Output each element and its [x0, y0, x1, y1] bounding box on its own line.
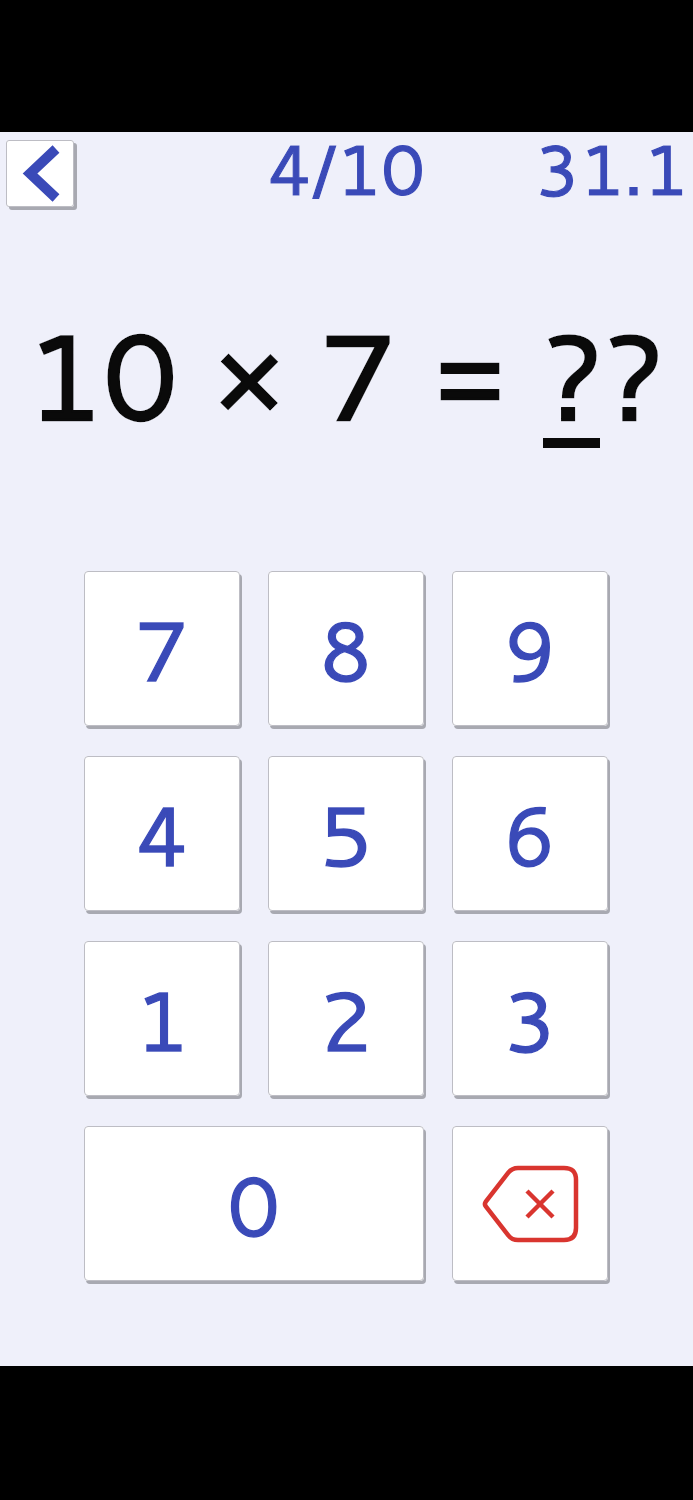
staticText: 4: [135, 774, 189, 893]
staticText: 6: [503, 774, 557, 893]
staticText: 31.1: [535, 118, 688, 217]
button[interactable]: 5: [268, 756, 424, 911]
button[interactable]: 7: [84, 571, 240, 726]
staticText: 0: [227, 1144, 281, 1263]
button[interactable]: 3: [452, 941, 608, 1096]
staticText: 5: [319, 774, 373, 893]
staticText: 3: [503, 959, 557, 1078]
button[interactable]: 0: [84, 1126, 424, 1281]
staticText: 31.1: [535, 118, 688, 217]
button[interactable]: 8: [268, 571, 424, 726]
staticText: 0: [227, 1144, 281, 1263]
button[interactable]: 1: [84, 941, 240, 1096]
staticText: 4/10: [267, 118, 426, 217]
staticText: 9: [503, 589, 557, 708]
staticText: 1: [135, 959, 189, 1078]
button[interactable]: [6, 140, 74, 207]
button[interactable]: 9: [452, 571, 608, 726]
staticText: 7: [135, 589, 189, 708]
button[interactable]: [452, 1126, 608, 1281]
button[interactable]: 2: [268, 941, 424, 1096]
button[interactable]: 6: [452, 756, 608, 911]
staticText: 8: [319, 589, 373, 708]
staticText: 7: [135, 589, 189, 708]
staticText: 9: [503, 589, 557, 708]
staticText: 6: [503, 774, 557, 893]
staticText: 8: [319, 589, 373, 708]
button[interactable]: 4: [84, 756, 240, 911]
staticText: 10 × 7 = ??: [26, 289, 667, 459]
staticText: 5: [319, 774, 373, 893]
staticText: 4: [135, 774, 189, 893]
staticText: 10 × 7 = ??: [26, 289, 667, 459]
staticText: 2: [319, 959, 373, 1078]
staticText: 4/10: [267, 118, 426, 217]
staticText: 3: [503, 959, 557, 1078]
staticText: 2: [319, 959, 373, 1078]
staticText: 1: [135, 959, 189, 1078]
